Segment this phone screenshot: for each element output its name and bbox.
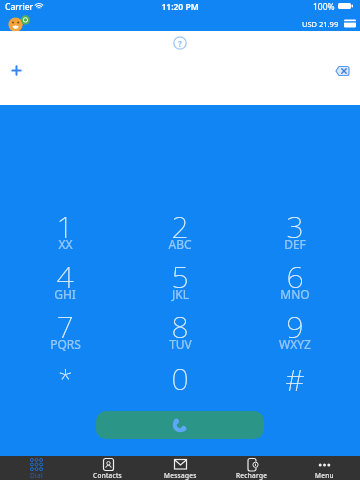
staticText: 6 [286,256,304,297]
button[interactable]: Messages [144,456,216,480]
staticText: 9 [286,306,304,347]
staticText: Messages [164,471,197,480]
staticText: Carrier [5,1,34,13]
staticText: MNO [280,286,310,302]
staticText: USD 21.99 [302,19,339,29]
button[interactable]: 2 [125,206,235,252]
button[interactable]: 9 [240,306,350,352]
staticText: * [58,360,73,395]
staticText: 7 [56,306,74,347]
staticText: 4 [56,256,74,297]
staticText: GHI [54,286,76,302]
staticText: 5 [171,256,189,297]
staticText: WXYZ [279,336,311,352]
staticText: 1 [56,206,74,247]
button[interactable]: Recharge [216,456,288,480]
button[interactable]: ? [168,35,192,51]
button[interactable]: 6 [240,256,350,302]
button[interactable]: 3 [240,206,350,252]
staticText: ? [178,38,182,49]
button[interactable]: # [240,359,350,405]
staticText: JKL [172,286,189,302]
button[interactable]: Dial [0,456,72,480]
staticText: PQRS [50,336,81,352]
button[interactable]: Contacts [72,456,144,480]
staticText: 2 [171,206,189,247]
button[interactable] [4,58,30,84]
button[interactable]: 5 [125,256,235,302]
staticText: Contacts [93,471,123,480]
staticText: # [285,359,305,400]
button[interactable]: Menu [288,456,360,480]
button[interactable]: 4 [10,256,120,302]
button[interactable]: * [10,360,120,406]
button[interactable]: 8 [125,306,235,352]
button[interactable] [96,411,264,439]
staticText: Recharge [236,471,268,480]
button[interactable]: 0 [125,358,235,404]
staticText: 100% [313,1,335,13]
staticText: 11:20 PM [0,1,360,13]
staticText: DEF [284,236,306,252]
staticText: XX [58,236,73,252]
button[interactable] [7,15,33,33]
staticText: 0 [171,358,189,399]
staticText: 8 [171,306,189,347]
staticText: Menu [315,471,334,480]
button[interactable]: 7 [10,306,120,352]
button[interactable]: 1 [10,206,120,252]
staticText: TUV [169,336,192,352]
staticText: 3 [286,206,304,247]
button[interactable]: USD 21.99 [240,16,358,31]
staticText: Dial [30,471,43,480]
button[interactable] [330,65,356,85]
staticText: ABC [168,236,192,252]
